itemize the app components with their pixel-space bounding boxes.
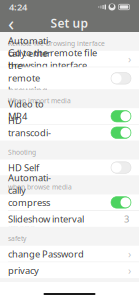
staticText: Set up (50, 15, 88, 31)
button[interactable]: Automatically compress large image (0, 194, 139, 210)
button[interactable]: change Password (0, 246, 139, 262)
staticText: › (128, 247, 131, 261)
button[interactable]: privacy (0, 262, 139, 278)
button[interactable]: Slideshow interval (0, 211, 139, 227)
staticText: When import media (8, 96, 71, 105)
staticText: Custom background image (8, 293, 98, 300)
staticText: change Password (8, 248, 84, 260)
staticText: Shooting (8, 148, 36, 157)
staticText: 3 (124, 213, 129, 225)
staticText: ‹ (8, 10, 14, 36)
staticText: Go to the remote file browsing interface (8, 46, 97, 71)
button[interactable]: HD Self (0, 160, 139, 176)
staticText: Automatically enter the remote browsing (8, 34, 51, 96)
staticText: HD transcoding (8, 114, 51, 151)
button[interactable]: Automatically enter the remote browsing (0, 67, 139, 89)
staticText: Remote file browsing interface (8, 39, 105, 48)
staticText: interface at startup (8, 97, 49, 122)
staticText: safety (8, 234, 26, 243)
button[interactable]: Back (0, 14, 22, 32)
staticText: Personalized topics (8, 285, 69, 294)
staticText: Automatically compress large image (8, 171, 51, 233)
button[interactable]: Go to the remote file browsing interface (0, 51, 139, 67)
staticText: 4:24 (9, 1, 27, 13)
staticText: when browse media (8, 183, 72, 191)
button[interactable]: HD transcoding (0, 125, 139, 141)
button[interactable]: Video to MP4 format (0, 108, 139, 124)
staticText: HD Self (8, 161, 39, 174)
staticText: Slideshow interval (8, 213, 84, 225)
staticText: Video to MP4 format (8, 98, 44, 135)
staticText: privacy (8, 264, 39, 276)
staticText: › (128, 52, 131, 66)
staticText: › (128, 263, 131, 277)
